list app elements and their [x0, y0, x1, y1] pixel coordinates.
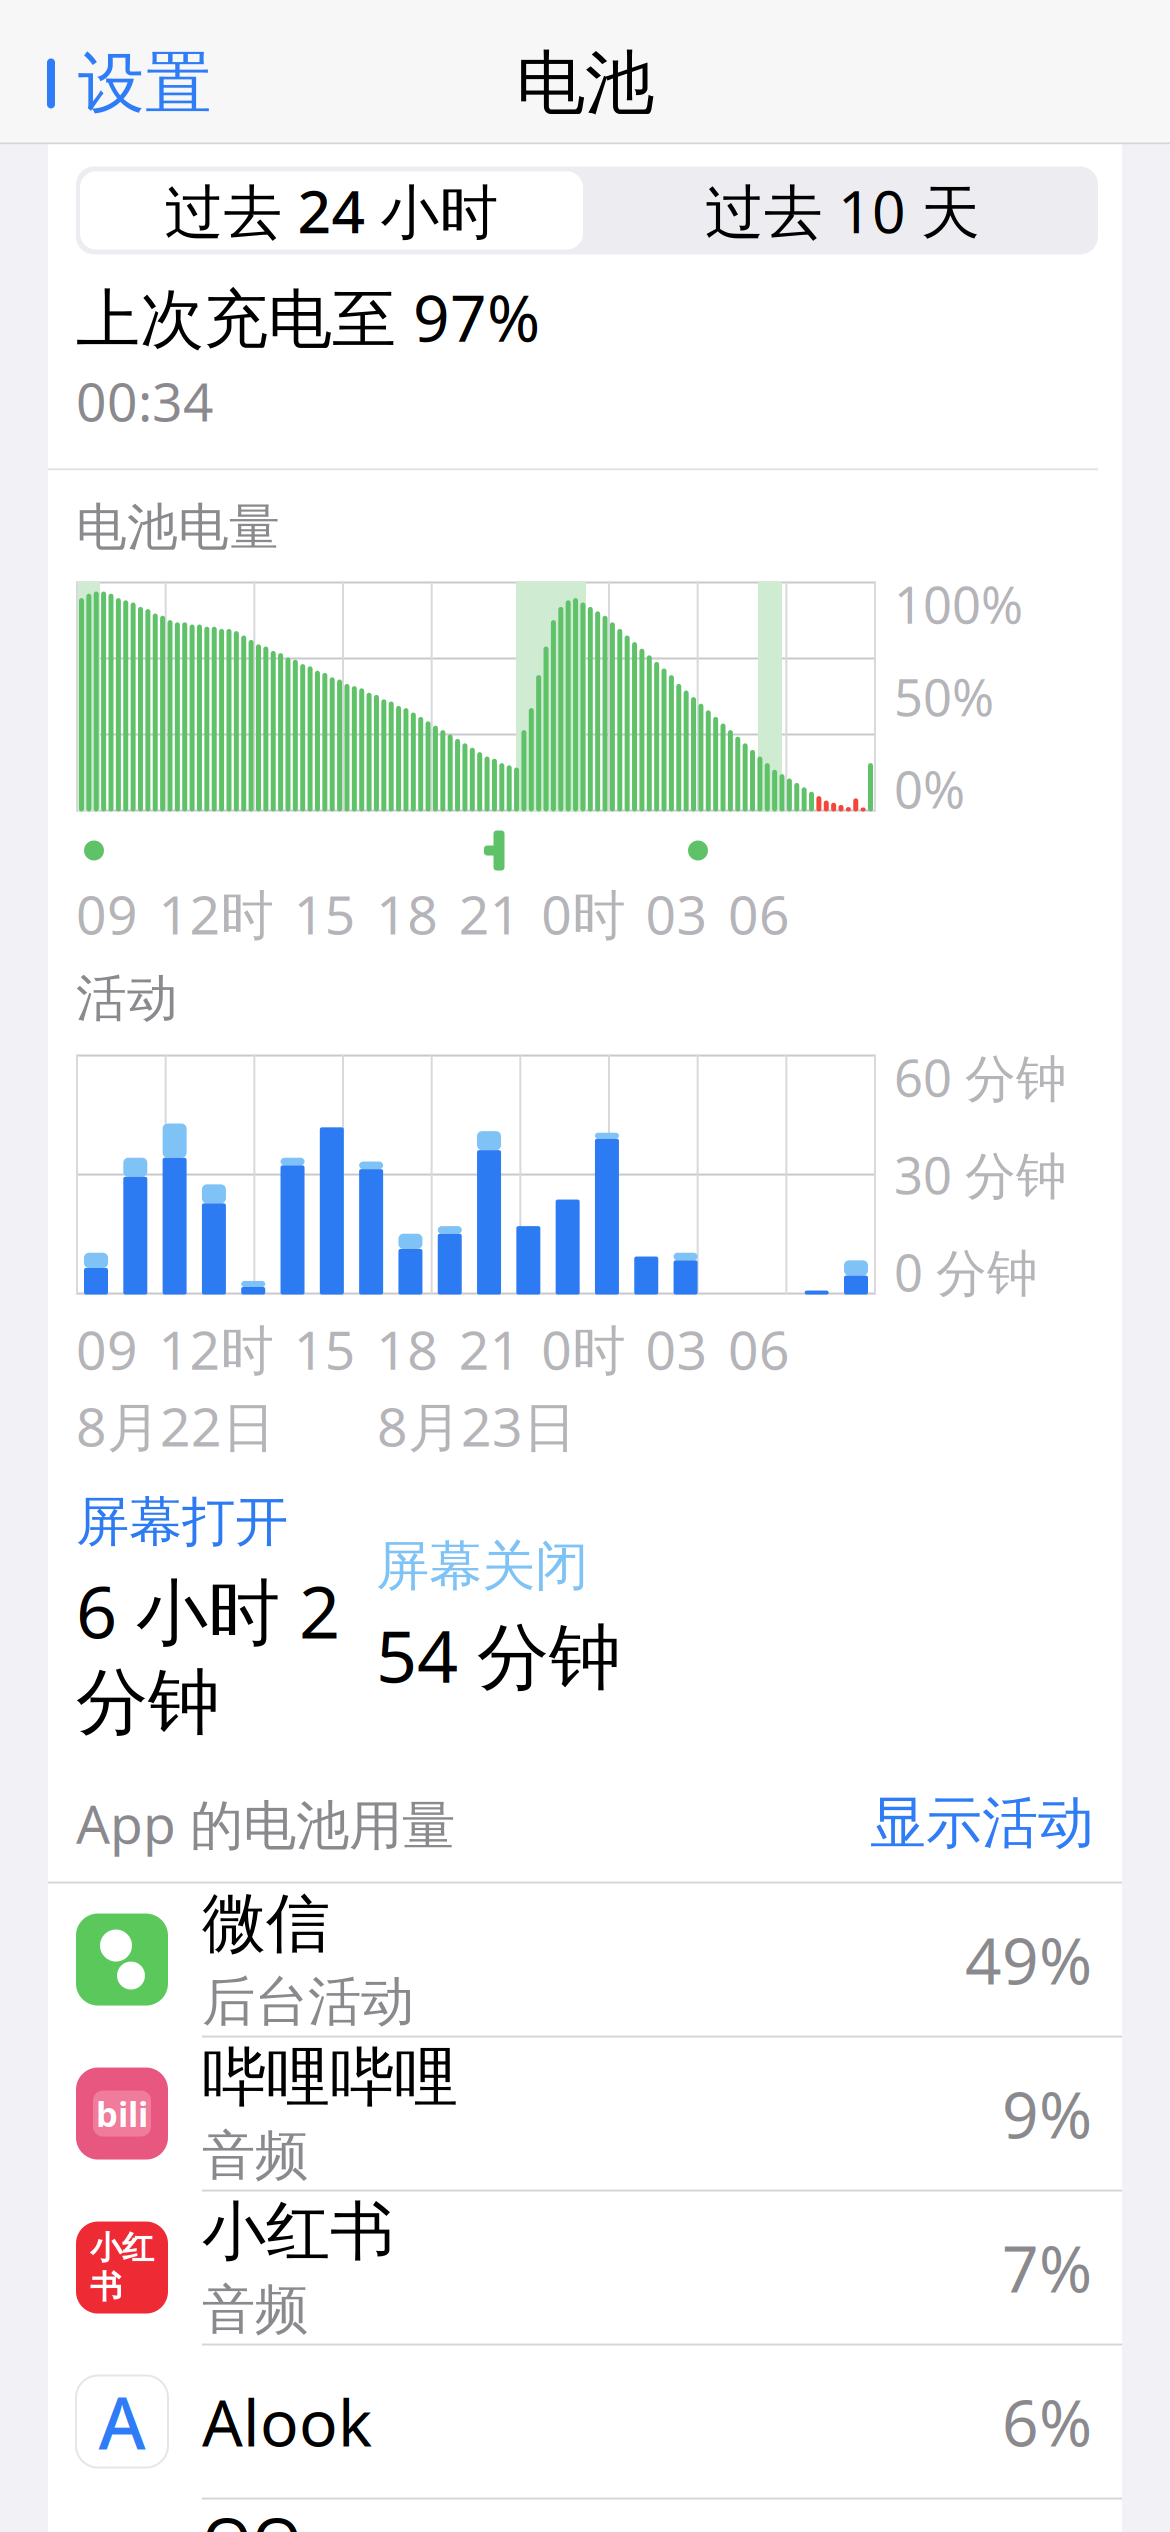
staticText: 03 — [646, 1314, 708, 1384]
staticText: 屏幕关闭 — [376, 1533, 588, 1599]
staticText: 显示活动 — [870, 1789, 1094, 1858]
staticText: 8月23日 — [377, 1390, 576, 1461]
staticText: 6 小时 2 分钟 — [76, 1563, 340, 1747]
staticText: QQ — [202, 2497, 302, 2532]
staticText: 49% — [965, 1917, 1092, 2002]
staticText: Alook — [202, 2379, 372, 2464]
staticText: 哔哩哔哩 — [202, 2038, 458, 2117]
staticText: 后台活动 — [202, 1969, 414, 2035]
staticText: 21 — [459, 878, 521, 949]
staticText: 过去 10 天 — [705, 171, 980, 249]
staticText: 0% — [894, 755, 965, 822]
staticText: 屏幕打开 — [76, 1489, 288, 1555]
staticText: 音频 — [202, 2123, 308, 2189]
staticText: 06 — [728, 878, 790, 949]
staticText: 8月22日 — [76, 1390, 275, 1461]
staticText: 过去 24 小时 — [164, 171, 498, 249]
staticText: 18 — [376, 878, 438, 949]
staticText: 15 — [294, 878, 356, 949]
staticText: 小红书 — [90, 2228, 154, 2307]
staticText: 03 — [646, 878, 708, 949]
staticText: 9% — [1002, 2071, 1092, 2156]
staticText: 21 — [459, 1314, 521, 1384]
staticText: 0时 — [541, 878, 625, 949]
staticText: 15 — [294, 1314, 356, 1384]
button[interactable]: bili — [48, 2037, 1122, 2191]
staticText: 电池电量 — [76, 496, 280, 558]
button[interactable]: 过去 10 天 — [587, 167, 1098, 253]
button[interactable]: A — [48, 2345, 1122, 2499]
staticText: App 的电池用量 — [76, 1788, 455, 1859]
staticText: 09 — [76, 878, 138, 949]
staticText: 电池 — [516, 41, 654, 126]
staticText: 12时 — [158, 878, 273, 949]
staticText: 6% — [1002, 2379, 1092, 2464]
staticText: 50% — [894, 663, 994, 730]
staticText: 音频 — [202, 2277, 308, 2343]
staticText: 18 — [376, 1314, 438, 1384]
staticText: 小红书 — [202, 2192, 394, 2271]
staticText: 00:34 — [76, 365, 214, 436]
staticText: A — [98, 2374, 145, 2469]
staticText: 微信 — [202, 1884, 330, 1963]
button[interactable]: 过去 24 小时 — [76, 167, 587, 253]
staticText: 12时 — [158, 1314, 273, 1384]
staticText: bili — [96, 2090, 148, 2136]
button[interactable]: 设置 — [0, 24, 212, 142]
staticText: 30 分钟 — [894, 1141, 1067, 1208]
staticText: 设置 — [78, 42, 212, 124]
staticText: 上次充电至 97% — [76, 274, 540, 359]
staticText: 54 分钟 — [376, 1607, 621, 1702]
button[interactable]: 显示活动 — [870, 1781, 1094, 1866]
staticText: 7% — [1002, 2225, 1092, 2310]
staticText: 06 — [728, 1314, 790, 1384]
staticText: 0时 — [541, 1314, 625, 1384]
staticText: 0 分钟 — [894, 1238, 1038, 1306]
staticText: 60 分钟 — [894, 1044, 1067, 1111]
staticText: 100% — [894, 570, 1023, 638]
button[interactable]: 小红书 — [48, 2191, 1122, 2345]
staticText: 09 — [76, 1314, 138, 1384]
button[interactable]: 微信 — [48, 1883, 1122, 2037]
button[interactable]: QQ — [48, 2499, 1122, 2532]
staticText: 活动 — [76, 967, 178, 1029]
